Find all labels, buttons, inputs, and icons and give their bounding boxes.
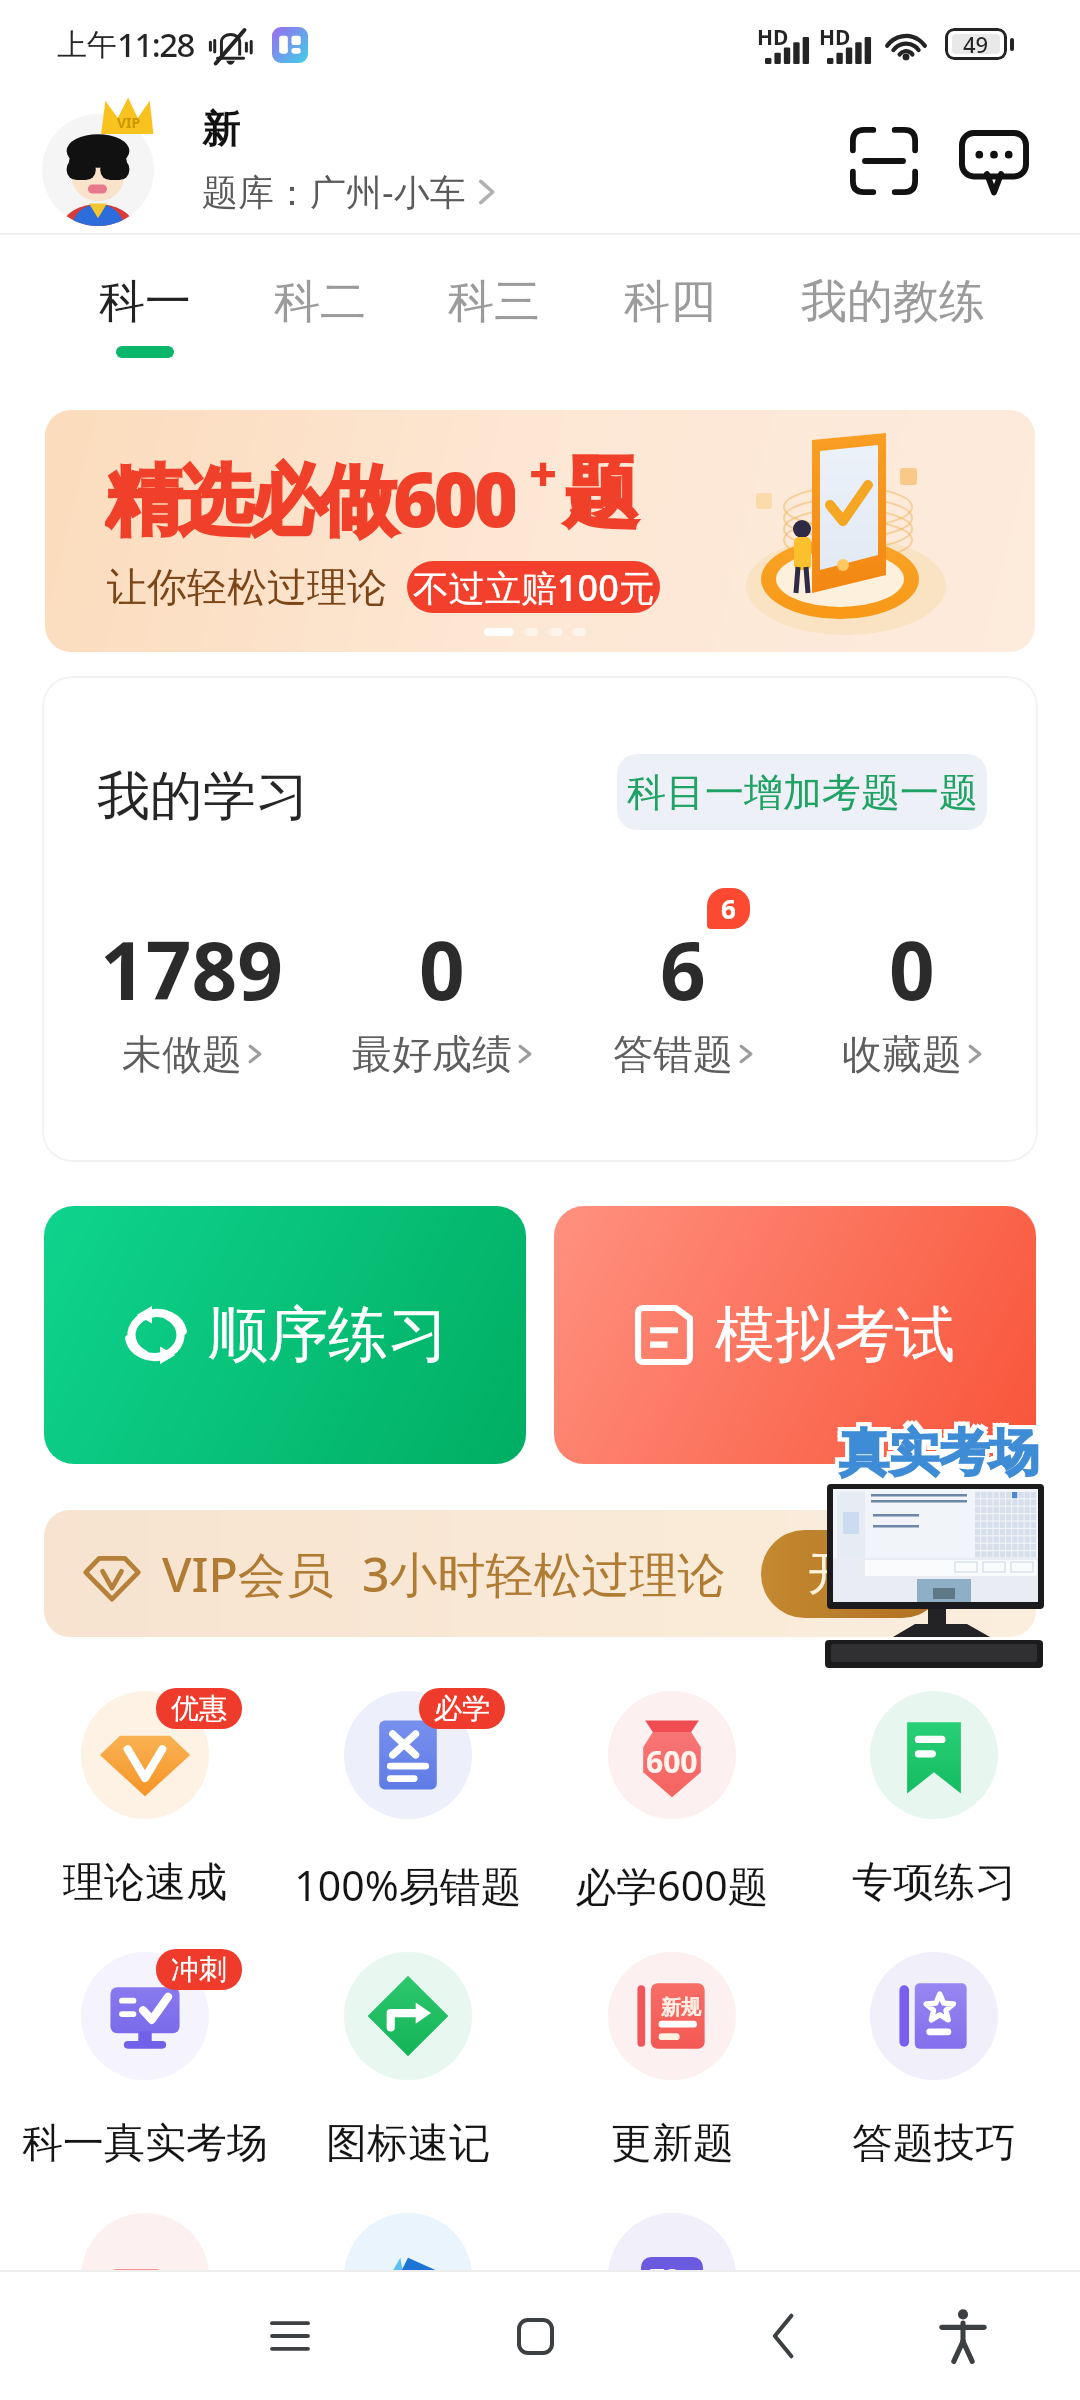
button[interactable]: 精选必做600 [45,410,1035,652]
button[interactable]: 优惠 [15,1680,275,1930]
staticText: 冲刺 [171,1952,227,1987]
button[interactable]: 新规 [542,1941,802,2191]
staticText: 3小时轻松过理论 [362,1541,726,1607]
staticText: HD [757,23,789,52]
staticText: 科一真实考场 [22,2118,268,2170]
staticText: 真实考场 [843,1426,1043,1489]
staticText: 真实考场 [835,1426,1035,1489]
button[interactable]: 顺序练习 [44,1206,526,1464]
staticText: 优惠 [171,1691,227,1726]
button[interactable]: Accessibility [903,2272,1023,2400]
staticText: HD [819,23,851,52]
staticText: 必学 [434,1691,490,1726]
staticText: 真实考场 [839,1426,1039,1489]
button[interactable]: 专项练习 [804,1680,1064,1930]
staticText: 专项练习 [852,1857,1016,1909]
staticText: 我的学习 [97,763,309,830]
staticText: 6 [721,891,736,926]
button[interactable]: 科目一增加考题一题 [617,754,987,830]
button[interactable]: 图标速记 [278,1941,538,2191]
button[interactable]: Back [723,2272,843,2400]
staticText: 1789 [100,914,284,1023]
staticText: 真实考场 [839,1422,1039,1485]
button[interactable]: 科三 [444,234,544,364]
staticText: 答错题 [613,1029,733,1079]
staticText: 科四 [624,273,716,331]
staticText: 真实考场 [835,1422,1035,1485]
button[interactable]: 0 [322,914,562,1124]
staticText: 11:28 [117,22,194,67]
staticText: 真实考场 [835,1418,1035,1481]
staticText: 科一 [99,273,191,331]
button[interactable]: Scan code [836,113,932,209]
staticText: 答题技巧 [852,2118,1016,2170]
staticText: 题 [563,446,639,542]
staticText: 必学600题 [575,1857,769,1913]
staticText: 我的教练 [801,273,985,331]
staticText: 49 [963,29,989,59]
staticText: 更新题 [611,2118,734,2170]
staticText: 开通 [808,1545,900,1603]
staticText: 上午 [57,26,117,64]
button[interactable]: Home [475,2272,595,2400]
staticText: 6 [660,914,706,1023]
staticText: 新规 [661,1995,701,2020]
staticText: 新 [202,105,240,153]
button[interactable]: 冲刺 [15,1941,275,2191]
button[interactable]: 科二 [270,234,370,364]
staticText: 模拟考试 [715,1297,955,1373]
button[interactable]: 必学 [278,1680,538,1930]
button[interactable]: 科四 [620,234,720,364]
button[interactable] [278,2202,538,2400]
button[interactable]: 模拟考试 [554,1206,1036,1464]
button[interactable]: 我的教练 [793,234,993,364]
button[interactable]: 1789 [72,914,312,1124]
staticText: 精选必做600 [105,446,515,542]
button[interactable]: 6 [563,914,803,1124]
staticText: 100%易错题 [294,1857,522,1913]
staticText: VIP会员 [162,1541,334,1607]
staticText: 让你轻松过理论 [107,562,387,612]
staticText: 科目一增加考题一题 [627,768,978,817]
staticText: 真实考场 [843,1418,1043,1481]
button[interactable]: 科一 [95,234,195,364]
button[interactable]: 0 [792,914,1032,1124]
staticText: 600 [646,1741,698,1782]
button[interactable]: Messages [946,113,1042,209]
staticText: 图标速记 [326,2118,490,2170]
staticText: 科三 [448,273,540,331]
staticText: 0 [419,914,465,1023]
staticText: 题库：广州-小车 [202,167,466,216]
staticText: 未做题 [122,1029,242,1079]
staticText: 科二 [274,273,366,331]
staticText: 顺序练习 [208,1297,448,1373]
staticText: 真实考场 [843,1422,1043,1485]
button[interactable]: 70+ [542,2202,802,2400]
button[interactable]: Recent apps [230,2272,350,2400]
button[interactable] [804,2202,1064,2400]
button[interactable]: VIP会员 [44,1510,1036,1637]
staticText: VIP [117,113,141,132]
staticText: 理论速成 [63,1857,227,1909]
staticText: 真实考场 [839,1418,1039,1481]
button[interactable] [15,2202,275,2400]
button[interactable]: 600 [542,1680,802,1930]
button[interactable]: 答题技巧 [804,1941,1064,2191]
staticText: 最好成绩 [352,1029,512,1079]
staticText: 0 [889,914,935,1023]
staticText: 70+ [650,2260,695,2295]
staticText: 收藏题 [842,1029,962,1079]
staticText: + [529,440,558,505]
staticText: 不过立赔100元 [413,563,655,612]
